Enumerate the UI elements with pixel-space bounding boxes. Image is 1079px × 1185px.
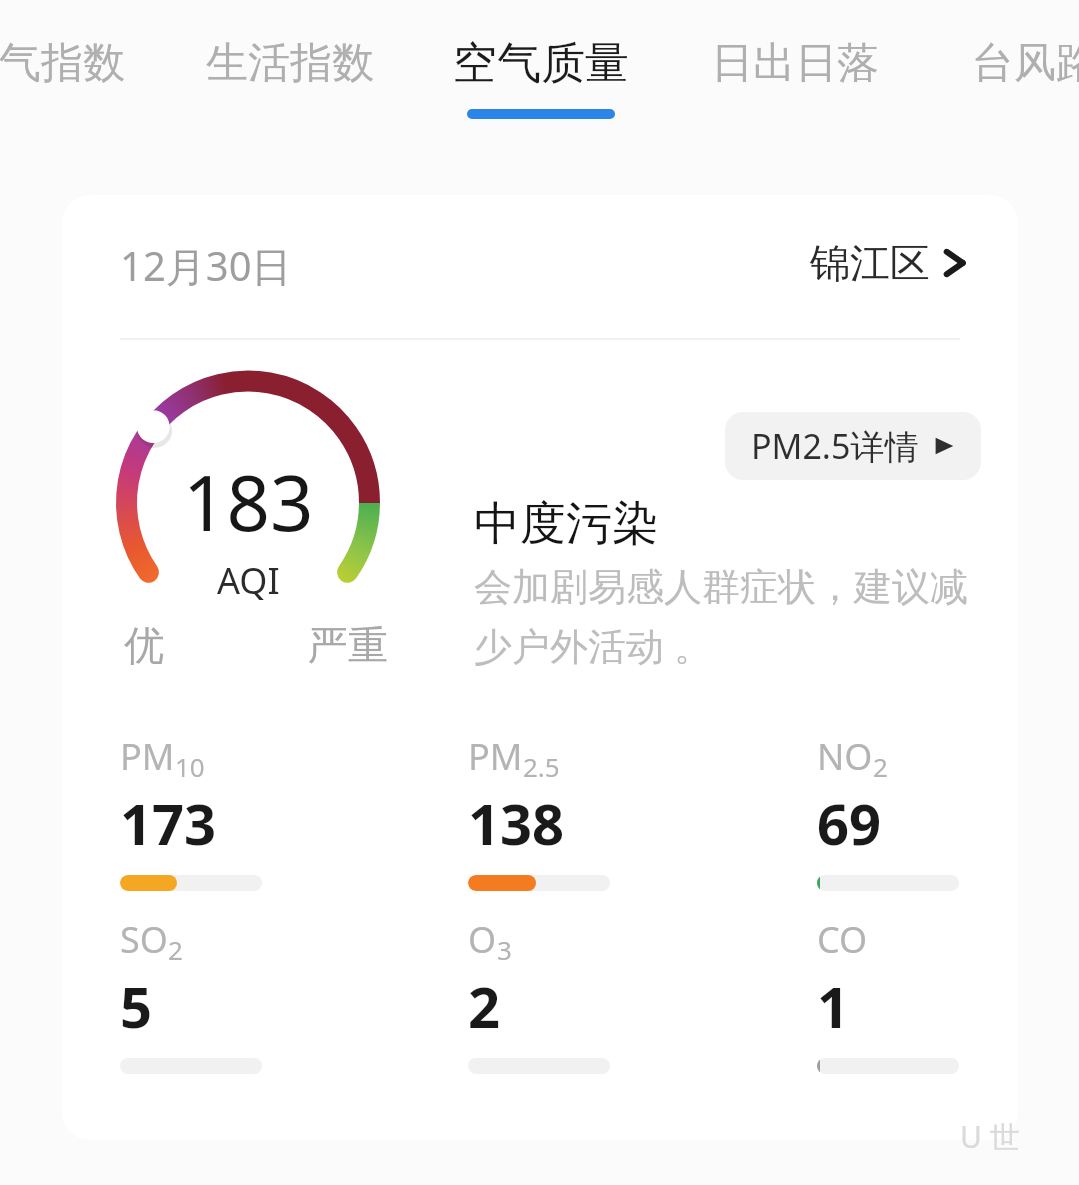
staticText: PM [468,732,523,781]
staticText: 空气质量 [453,36,629,91]
staticText: 12月30日 [120,238,292,293]
staticText: 5 [120,968,153,1044]
staticText: CO [817,915,868,964]
button[interactable]: 气指数 [0,28,125,98]
staticText: 优 [124,620,164,670]
staticText: 生活指数 [206,37,374,90]
button[interactable]: PM2.5详情 [725,412,981,480]
staticText: AQI [217,556,280,605]
staticText: NO [817,732,873,781]
staticText: 173 [120,785,217,861]
other: Change district [942,243,968,283]
staticText: 会加剧易感人群症状，建议减少户外活动 。 [474,563,974,671]
staticText: 严重 [308,620,388,670]
button[interactable]: 锦江区 [810,231,968,295]
staticText: 138 [468,785,565,861]
button[interactable]: CO [817,915,997,1074]
button[interactable]: SO [120,915,300,1074]
button[interactable]: 空气质量 [453,28,629,98]
button[interactable]: 生活指数 [206,28,374,98]
staticText: 10 [175,749,205,784]
staticText: 2 [468,968,501,1044]
button[interactable]: PM [468,732,648,891]
staticText: 183 [183,450,314,554]
staticText: 1 [817,968,850,1044]
button[interactable]: PM [120,732,300,891]
staticText: U 世 [960,1116,1020,1157]
staticText: SO [120,915,168,964]
staticText: PM2.5详情 [751,423,919,469]
staticText: 气指数 [0,37,125,90]
staticText: 日出日落 [711,37,879,90]
staticText: 2.5 [523,749,560,784]
staticText: 3 [497,932,512,967]
button[interactable]: 台风路 [972,28,1079,98]
staticText: 台风路 [972,37,1079,90]
staticText: O [468,915,497,964]
staticText: 中度污染 [474,495,658,553]
button[interactable]: O [468,915,648,1074]
staticText: 2 [168,932,183,967]
staticText: 2 [873,749,888,784]
staticText: 69 [817,785,882,861]
button[interactable]: 日出日落 [711,28,879,98]
staticText: PM [120,732,175,781]
staticText: 锦江区 [810,238,930,288]
button[interactable]: NO [817,732,997,891]
